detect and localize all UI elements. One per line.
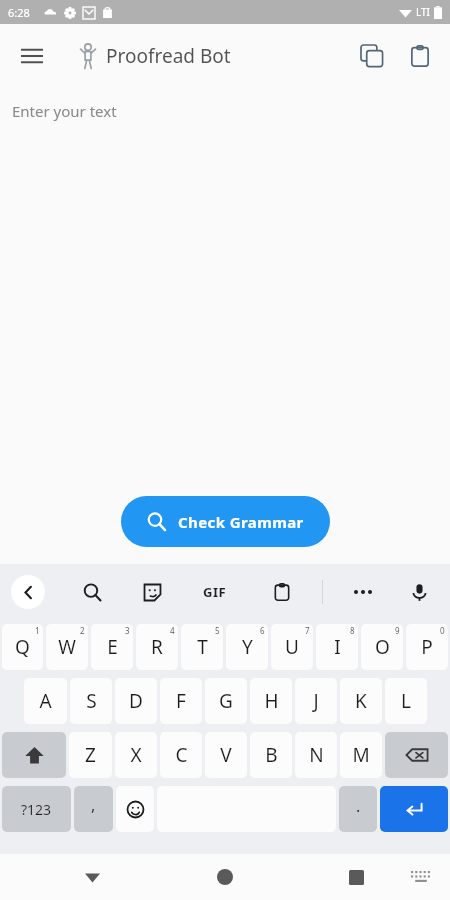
button[interactable]: A (24, 678, 67, 724)
button[interactable]: Y (226, 624, 268, 670)
staticText: 1 (35, 625, 40, 636)
staticText: H (264, 688, 279, 714)
staticText: 6 (260, 625, 265, 636)
button[interactable]: L (385, 678, 427, 724)
staticText: S (86, 688, 97, 714)
staticText: 3 (125, 625, 130, 636)
staticText: 6:28 (8, 5, 30, 20)
button[interactable]: K (340, 678, 382, 724)
button[interactable]: J (295, 678, 337, 724)
button[interactable]: Back (72, 857, 112, 897)
button[interactable]: Stickers (132, 572, 172, 612)
button[interactable]: N (295, 732, 337, 778)
staticText: Check Grammar (178, 512, 304, 532)
button[interactable]: W (46, 624, 88, 670)
button[interactable]: V (205, 732, 247, 778)
staticText: R (151, 634, 163, 660)
button[interactable]: S (70, 678, 112, 724)
button[interactable]: ?123 (2, 786, 71, 832)
staticText: Y (242, 634, 253, 660)
button[interactable]: . (339, 786, 377, 832)
staticText: 7 (305, 625, 310, 636)
staticText: Q (15, 634, 30, 660)
staticText: X (130, 742, 142, 768)
button[interactable]: O (361, 624, 403, 670)
button[interactable]: F (160, 678, 202, 724)
button[interactable]: , (74, 786, 113, 832)
button[interactable]: More options (343, 572, 383, 612)
staticText: Z (85, 742, 96, 768)
button[interactable]: Enter (380, 786, 448, 832)
button[interactable]: Check Grammar (121, 496, 330, 547)
staticText: M (352, 742, 370, 768)
staticText: G (219, 688, 233, 714)
staticText: E (107, 634, 118, 660)
staticText: Enter your text (12, 101, 117, 121)
staticText: V (220, 742, 232, 768)
button[interactable]: B (250, 732, 292, 778)
staticText: A (39, 688, 52, 714)
button[interactable]: Backspace (385, 732, 448, 778)
staticText: J (313, 688, 319, 714)
button[interactable]: Q (2, 624, 43, 670)
button[interactable]: Voice input (399, 572, 439, 612)
button[interactable]: Home (205, 857, 245, 897)
button[interactable]: E (91, 624, 133, 670)
staticText: , (91, 794, 96, 816)
button[interactable]: M (340, 732, 382, 778)
button[interactable]: Menu (8, 32, 56, 80)
button[interactable]: X (115, 732, 157, 778)
button[interactable]: GIF (192, 569, 238, 615)
button[interactable]: C (160, 732, 202, 778)
staticText: W (58, 634, 76, 660)
staticText: D (129, 688, 143, 714)
staticText: 2 (80, 625, 85, 636)
button[interactable]: Emoji (116, 786, 154, 832)
button[interactable]: I (316, 624, 358, 670)
button[interactable]: Clipboard (262, 572, 302, 612)
button[interactable]: H (250, 678, 292, 724)
button[interactable]: Recents (336, 857, 376, 897)
button[interactable]: P (406, 624, 448, 670)
staticText: LTI (416, 5, 430, 19)
button[interactable]: D (115, 678, 157, 724)
staticText: ?123 (21, 800, 52, 819)
staticText: L (401, 688, 411, 714)
button[interactable]: R (136, 624, 178, 670)
button[interactable]: T (181, 624, 223, 670)
staticText: P (421, 634, 433, 660)
staticText: GIF (203, 583, 227, 601)
staticText: 8 (350, 625, 355, 636)
staticText: F (176, 688, 186, 714)
staticText: O (375, 634, 390, 660)
staticText: U (285, 634, 299, 660)
staticText: N (309, 742, 324, 768)
staticText: . (356, 795, 361, 817)
staticText: Proofread Bot (106, 43, 231, 69)
staticText: B (265, 742, 278, 768)
staticText: T (197, 634, 208, 660)
button[interactable]: U (271, 624, 313, 670)
button[interactable]: G (205, 678, 247, 724)
button[interactable]: Paste (396, 32, 444, 80)
staticText: K (355, 688, 367, 714)
button[interactable]: Back (11, 575, 45, 609)
staticText: I (334, 634, 341, 660)
staticText: C (175, 742, 188, 768)
staticText: 0 (440, 625, 445, 636)
staticText: 5 (215, 625, 220, 636)
staticText: 4 (170, 625, 175, 636)
button[interactable]: Shift (2, 732, 66, 778)
button[interactable]: Search (72, 572, 112, 612)
button[interactable]: Switch keyboard (404, 860, 438, 894)
button[interactable]: Z (69, 732, 112, 778)
staticText: 9 (395, 625, 400, 636)
button[interactable]: Copy (348, 32, 396, 80)
